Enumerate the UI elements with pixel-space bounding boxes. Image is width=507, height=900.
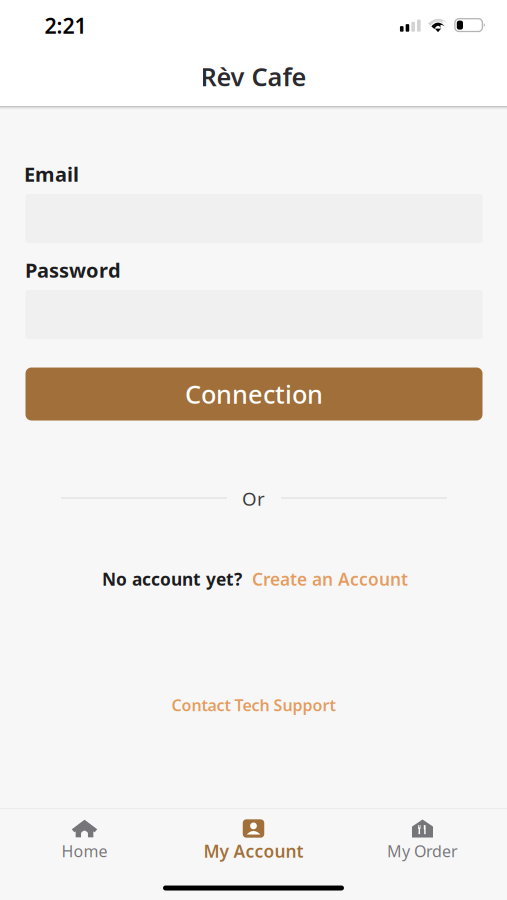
button[interactable]: My Order — [338, 817, 507, 873]
staticText: Connection — [185, 377, 323, 411]
button[interactable]: Connection — [25, 367, 482, 420]
staticText: My Account — [203, 839, 303, 862]
staticText: Password — [25, 257, 121, 283]
staticText: Contact Tech Support — [171, 694, 335, 716]
staticText: Home — [61, 840, 107, 862]
staticText: Email — [24, 161, 79, 187]
button[interactable]: My Account — [169, 817, 338, 873]
staticText: My Order — [387, 840, 458, 862]
staticText: Rèv Cafe — [200, 60, 306, 93]
staticText: Create an Account — [252, 567, 408, 590]
button[interactable]: Contact Tech Support — [171, 694, 335, 716]
staticText: Or — [242, 486, 265, 511]
button[interactable]: Create an Account — [252, 567, 408, 590]
button[interactable]: Home — [0, 817, 169, 873]
staticText: 2:21 — [44, 11, 86, 39]
staticText: No account yet? — [102, 567, 242, 590]
